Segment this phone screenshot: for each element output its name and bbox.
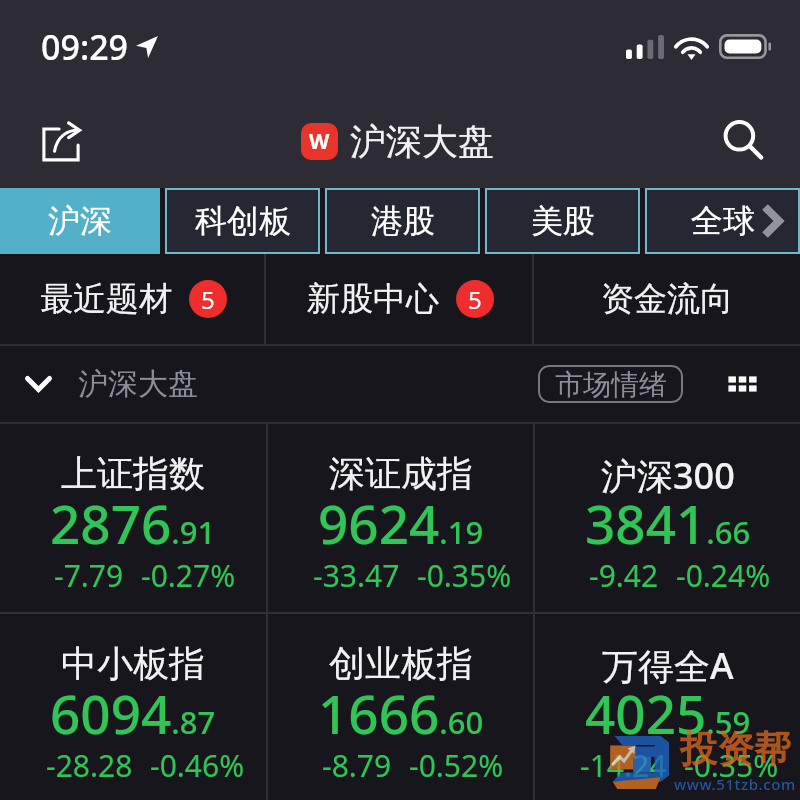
staticText: 沪深300: [601, 451, 735, 500]
staticText: -0.52%: [409, 745, 504, 786]
button[interactable]: 上证指数: [0, 424, 266, 612]
button[interactable]: 深证成指: [268, 424, 533, 612]
staticText: 上证指数: [61, 451, 205, 496]
staticText: 最近题材: [40, 278, 172, 320]
staticText: -0.24%: [676, 555, 771, 596]
staticText: -0.27%: [141, 555, 236, 596]
staticText: 万得全A: [602, 641, 734, 690]
button[interactable]: 科创板: [165, 188, 320, 254]
staticText: -33.47: [313, 555, 400, 596]
staticText: 5: [468, 283, 482, 316]
staticText: -0.35%: [684, 745, 779, 786]
staticText: -8.79: [322, 745, 392, 786]
staticText: 中小板指: [61, 641, 205, 686]
staticText: www.51tzb.com: [674, 774, 796, 794]
button[interactable]: Grid view: [722, 364, 762, 404]
staticText: 4025.59: [585, 677, 751, 749]
staticText: 沪深大盘: [78, 365, 198, 403]
button[interactable]: 新股中心: [266, 254, 532, 344]
staticText: -7.79: [54, 555, 124, 596]
staticText: 09:29: [41, 24, 129, 70]
button[interactable]: 中小板指: [0, 614, 266, 800]
staticText: -9.42: [589, 555, 659, 596]
staticText: 沪深: [48, 201, 112, 241]
staticText: 3841.66: [585, 487, 751, 559]
staticText: 2876.91: [50, 487, 216, 559]
staticText: 6094.87: [50, 677, 216, 749]
staticText: 市场情绪: [555, 367, 667, 402]
staticText: 5: [201, 283, 215, 316]
button[interactable]: 资金流向: [534, 254, 800, 344]
button[interactable]: 沪深300: [535, 424, 800, 612]
staticText: 深证成指: [329, 451, 473, 496]
staticText: 全球: [691, 201, 755, 241]
staticText: 创业板指: [329, 641, 473, 686]
staticText: -28.28: [46, 745, 133, 786]
button[interactable]: Share: [31, 113, 91, 173]
button[interactable]: Collapse: [20, 366, 56, 402]
staticText: -0.46%: [150, 745, 245, 786]
button[interactable]: 创业板指: [268, 614, 533, 800]
staticText: 投资帮: [680, 726, 791, 773]
button[interactable]: 市场情绪: [538, 365, 683, 403]
button[interactable]: 最近题材: [0, 254, 264, 344]
staticText: 科创板: [195, 201, 291, 241]
staticText: -14.24: [580, 745, 667, 786]
button[interactable]: 沪深: [0, 188, 160, 254]
button[interactable]: 港股: [325, 188, 480, 254]
staticText: 新股中心: [307, 278, 439, 320]
staticText: 1666.60: [318, 677, 484, 749]
button[interactable]: Search: [714, 110, 774, 170]
staticText: W: [309, 127, 330, 156]
staticText: 港股: [371, 201, 435, 241]
button[interactable]: 全球: [645, 188, 800, 254]
staticText: 沪深大盘: [350, 119, 494, 164]
staticText: 资金流向: [601, 278, 733, 320]
staticText: -0.35%: [417, 555, 512, 596]
staticText: 9624.19: [318, 487, 484, 559]
button[interactable]: 美股: [485, 188, 640, 254]
staticText: 美股: [531, 201, 595, 241]
button[interactable]: 万得全A: [535, 614, 800, 800]
